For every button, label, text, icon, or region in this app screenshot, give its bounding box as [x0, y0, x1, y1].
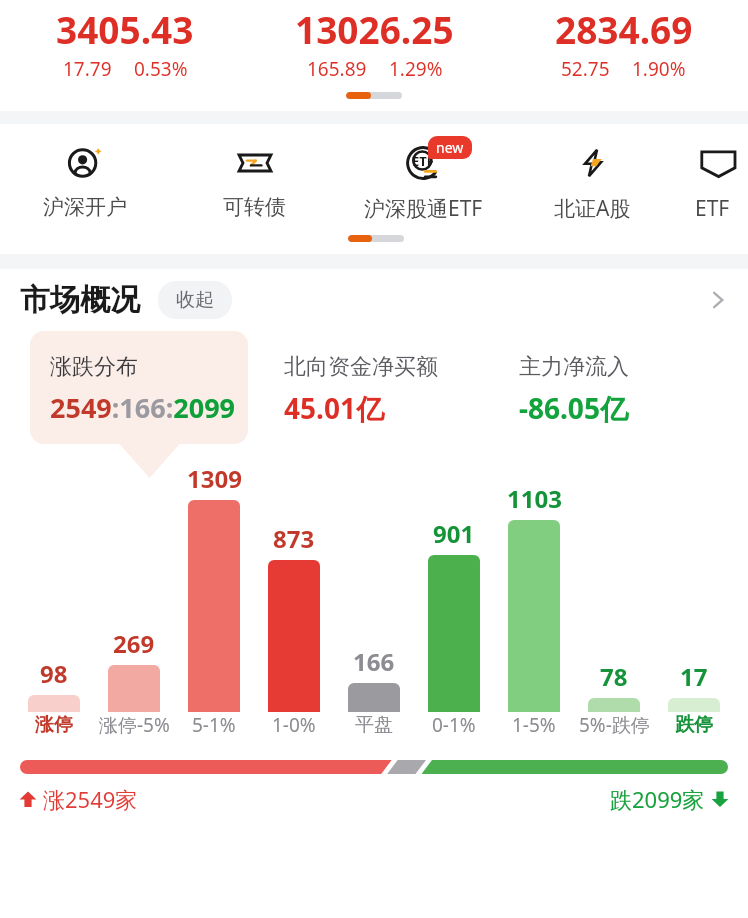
staticText: 3405.43 — [56, 4, 194, 54]
staticText: 45.01亿 — [284, 389, 384, 427]
staticText: 5-1% — [192, 712, 236, 738]
other: 更多 — [706, 288, 730, 312]
button[interactable]: 3405.43 — [0, 0, 250, 82]
staticText: 2549:166:2099 — [50, 389, 236, 426]
button[interactable]: 涨跌分布 — [30, 331, 248, 444]
staticText: 沪深股通ETF — [364, 194, 483, 223]
button[interactable]: ETF — [677, 140, 748, 223]
button[interactable]: 1309 — [174, 462, 254, 712]
staticText: 17 — [680, 660, 708, 693]
staticText: 平盘 — [355, 713, 393, 737]
staticText: 901 — [433, 517, 475, 550]
staticText: 可转债 — [223, 194, 286, 220]
staticText: 269 — [113, 627, 155, 660]
staticText: 涨2549家 — [43, 784, 138, 814]
button[interactable]: 主力净流入 — [501, 331, 718, 444]
staticText: 北向资金净买额 — [284, 353, 438, 381]
staticText: 收起 — [176, 288, 214, 312]
button[interactable]: 17 — [654, 660, 734, 712]
other: ETF — [693, 143, 733, 183]
staticText: 0.53% — [134, 56, 188, 82]
other: 沪深开户 — [65, 143, 105, 183]
staticText: 1.29% — [389, 56, 443, 82]
staticText: -86.05亿 — [519, 389, 628, 427]
button[interactable]: 沪深开户 — [0, 140, 170, 220]
staticText: 52.75 — [561, 56, 610, 82]
button[interactable]: 北证A股 — [508, 140, 677, 223]
button[interactable]: 市场概况 — [0, 269, 748, 331]
staticText: 涨停 — [35, 713, 73, 737]
other: 北证A股 — [573, 143, 613, 183]
staticText: 873 — [273, 522, 315, 555]
button[interactable]: 2834.69 — [499, 0, 748, 82]
button[interactable]: 收起 — [158, 281, 232, 319]
button[interactable]: 78 — [574, 660, 654, 712]
button[interactable]: 可转债 — [170, 140, 339, 220]
staticText: 涨跌分布 — [50, 353, 138, 381]
staticText: 主力净流入 — [519, 353, 629, 381]
staticText: new — [436, 138, 464, 157]
button[interactable]: 沪深股通ETF — [339, 140, 508, 223]
staticText: 1-5% — [512, 712, 556, 738]
staticText: 沪深开户 — [43, 194, 127, 220]
button[interactable]: 269 — [94, 627, 174, 712]
staticText: 1103 — [507, 482, 562, 515]
button[interactable]: 166 — [334, 645, 414, 712]
other: 可转债 — [235, 143, 275, 183]
staticText: 跌停 — [675, 713, 713, 737]
staticText: 2834.69 — [555, 4, 693, 54]
button[interactable]: 涨2549家 — [18, 784, 138, 814]
button[interactable]: 98 — [14, 657, 94, 712]
staticText: 98 — [40, 657, 68, 690]
staticText: 13026.25 — [295, 4, 454, 54]
button[interactable]: 北向资金净买额 — [266, 331, 483, 444]
staticText: 5%-跌停 — [579, 712, 650, 738]
staticText: 17.79 — [63, 56, 112, 82]
staticText: ETF — [412, 152, 434, 170]
staticText: 北证A股 — [554, 194, 631, 223]
staticText: 涨停-5% — [99, 712, 170, 738]
staticText: 165.89 — [307, 56, 367, 82]
staticText: 1309 — [187, 462, 242, 495]
button[interactable]: 跌2099家 — [610, 784, 730, 814]
staticText: 1.90% — [632, 56, 686, 82]
staticText: 166 — [353, 645, 395, 678]
staticText: 市场概况 — [20, 281, 140, 319]
button[interactable]: 873 — [254, 522, 334, 712]
staticText: 跌2099家 — [610, 784, 705, 814]
staticText: 1-0% — [272, 712, 316, 738]
button[interactable]: 13026.25 — [250, 0, 499, 82]
staticText: 0-1% — [432, 712, 476, 738]
staticText: 78 — [600, 660, 628, 693]
button[interactable]: 901 — [414, 517, 494, 712]
staticText: ETF — [695, 194, 730, 223]
other: 沪深股通ETF — [403, 142, 445, 184]
button[interactable]: 1103 — [494, 482, 574, 712]
